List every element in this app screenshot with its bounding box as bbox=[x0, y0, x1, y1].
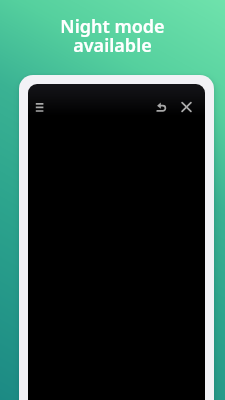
staticText: Night mode available bbox=[0, 14, 225, 57]
